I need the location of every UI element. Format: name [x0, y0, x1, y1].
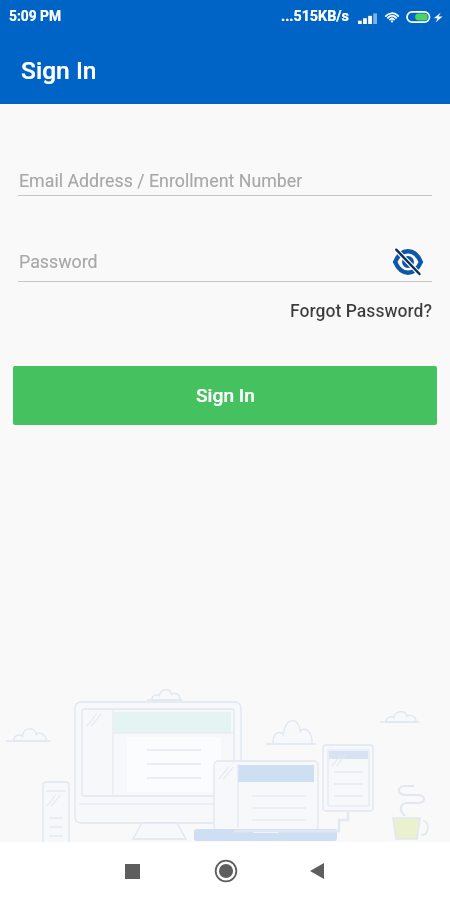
- button[interactable]: Forgot Password?: [290, 299, 450, 324]
- button[interactable]: Recent apps: [110, 849, 154, 893]
- staticText: Sign In: [21, 56, 97, 85]
- button[interactable]: Show password: [394, 248, 422, 276]
- button[interactable]: Sign In: [13, 366, 437, 425]
- staticText: 5:09 PM: [9, 8, 62, 24]
- staticText: Sign In: [196, 384, 255, 407]
- staticText: Email Address / Enrollment Number: [19, 170, 303, 191]
- button[interactable]: Back: [295, 849, 339, 893]
- staticText: Forgot Password?: [290, 301, 433, 322]
- staticText: ...515KB/s: [281, 8, 349, 25]
- staticText: Password: [19, 251, 98, 272]
- button[interactable]: Home: [204, 849, 248, 893]
